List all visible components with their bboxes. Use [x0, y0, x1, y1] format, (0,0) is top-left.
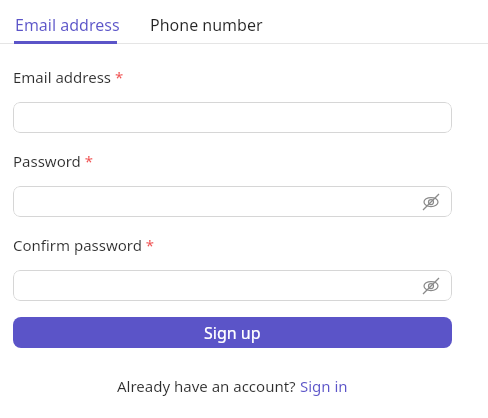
button[interactable] — [13, 186, 452, 217]
staticText: Sign up — [204, 322, 261, 344]
staticText: Confirm password * — [13, 235, 155, 255]
button[interactable] — [13, 102, 452, 133]
staticText: Already have an account? — [117, 376, 300, 396]
button[interactable] — [13, 270, 452, 301]
staticText: Email address * — [13, 67, 124, 87]
button[interactable]: Phone number — [150, 14, 263, 36]
button[interactable]: Sign in — [300, 376, 348, 396]
button[interactable]: Sign up — [13, 317, 452, 348]
button[interactable]: Email address — [15, 14, 120, 36]
staticText: Password * — [13, 151, 94, 171]
